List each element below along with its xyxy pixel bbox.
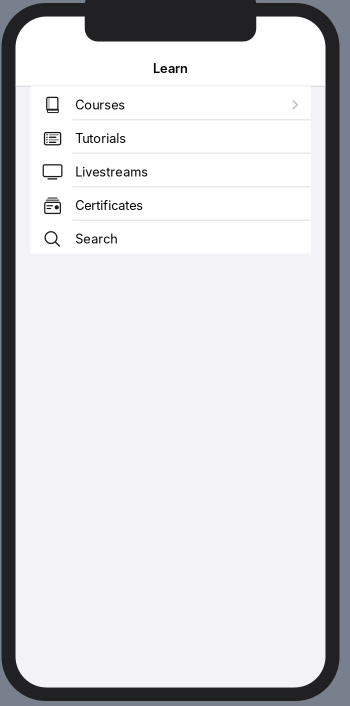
staticText: Certificates bbox=[75, 198, 143, 213]
staticText: Learn bbox=[153, 61, 188, 76]
button[interactable]: Livestreams bbox=[30, 153, 311, 187]
staticText: Livestreams bbox=[75, 164, 148, 179]
staticText: Courses bbox=[75, 97, 125, 112]
staticText: Search bbox=[75, 231, 117, 246]
button[interactable]: Certificates bbox=[30, 187, 311, 220]
button[interactable]: Courses bbox=[30, 86, 311, 120]
staticText: Tutorials bbox=[75, 131, 126, 146]
button[interactable]: Search bbox=[30, 220, 311, 254]
button[interactable]: Tutorials bbox=[30, 120, 311, 153]
